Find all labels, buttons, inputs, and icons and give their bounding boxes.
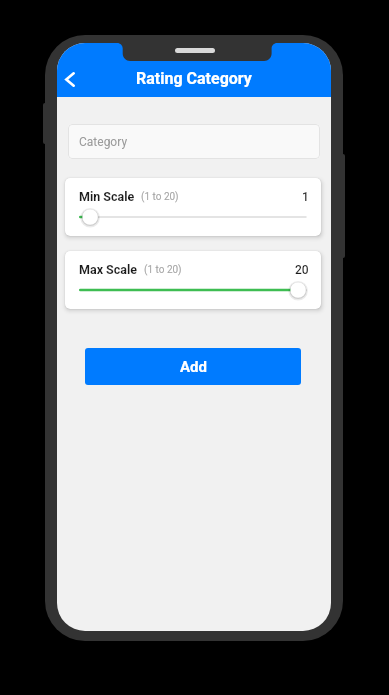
staticText: Add — [180, 358, 207, 376]
button[interactable]: Min Scale slider — [78, 207, 308, 227]
button[interactable]: Add — [85, 348, 301, 385]
staticText: Max Scale — [79, 262, 138, 277]
staticText: Category — [79, 135, 128, 149]
staticText: (1 to 20) — [141, 191, 179, 203]
staticText: 1 — [302, 190, 309, 204]
button[interactable]: Category — [68, 124, 320, 159]
staticText: Rating Category — [136, 69, 252, 88]
button[interactable]: Max Scale slider — [78, 280, 308, 300]
button[interactable]: Back — [57, 61, 89, 95]
staticText: (1 to 20) — [144, 264, 182, 276]
staticText: 20 — [295, 263, 309, 277]
staticText: Min Scale — [79, 189, 135, 204]
